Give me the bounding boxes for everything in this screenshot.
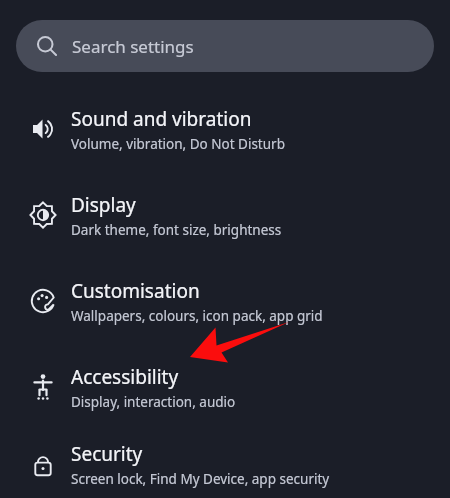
staticText: Search settings — [72, 35, 194, 58]
button[interactable]: Display — [0, 172, 450, 258]
button[interactable]: Security — [0, 430, 450, 498]
button[interactable]: Search settings — [16, 20, 434, 72]
staticText: Accessibility — [71, 364, 179, 390]
staticText: Sound and vibration — [71, 106, 252, 132]
staticText: Display, interaction, audio — [71, 393, 236, 411]
button[interactable]: Sound and vibration — [0, 86, 450, 172]
staticText: Display — [71, 192, 136, 218]
staticText: Dark theme, font size, brightness — [71, 221, 282, 239]
staticText: Customisation — [71, 278, 200, 304]
staticText: Screen lock, Find My Device, app securit… — [71, 470, 330, 488]
button[interactable]: Customisation — [0, 258, 450, 344]
staticText: Wallpapers, colours, icon pack, app grid — [71, 307, 323, 325]
staticText: Security — [71, 441, 143, 467]
staticText: Volume, vibration, Do Not Disturb — [71, 135, 285, 153]
button[interactable]: Accessibility — [0, 344, 450, 430]
